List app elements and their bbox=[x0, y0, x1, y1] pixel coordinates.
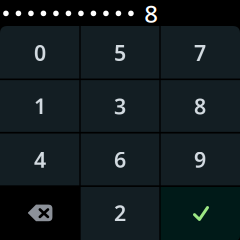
button[interactable]: Confirm bbox=[160, 186, 240, 240]
staticText: 1 bbox=[34, 92, 46, 120]
button[interactable]: 3 bbox=[80, 79, 160, 133]
button[interactable]: 1 bbox=[0, 79, 80, 133]
staticText: 3 bbox=[114, 92, 126, 120]
button[interactable]: Delete bbox=[0, 186, 80, 240]
staticText: 9 bbox=[194, 145, 206, 174]
button[interactable]: 2 bbox=[80, 186, 160, 240]
staticText: 6 bbox=[114, 145, 126, 174]
staticText: 7 bbox=[194, 38, 206, 67]
staticText: 4 bbox=[34, 145, 46, 174]
staticText: 8 bbox=[194, 92, 206, 120]
button[interactable]: 7 bbox=[160, 26, 240, 79]
staticText: 0 bbox=[34, 38, 46, 67]
button[interactable]: 8 bbox=[160, 79, 240, 133]
button[interactable]: 9 bbox=[160, 133, 240, 186]
staticText: 2 bbox=[114, 199, 126, 227]
staticText: 5 bbox=[114, 38, 126, 67]
button[interactable]: 4 bbox=[0, 133, 80, 186]
button[interactable]: 5 bbox=[80, 26, 160, 79]
staticText: 8 bbox=[144, 0, 158, 29]
button[interactable]: 6 bbox=[80, 133, 160, 186]
button[interactable]: 0 bbox=[0, 26, 80, 79]
